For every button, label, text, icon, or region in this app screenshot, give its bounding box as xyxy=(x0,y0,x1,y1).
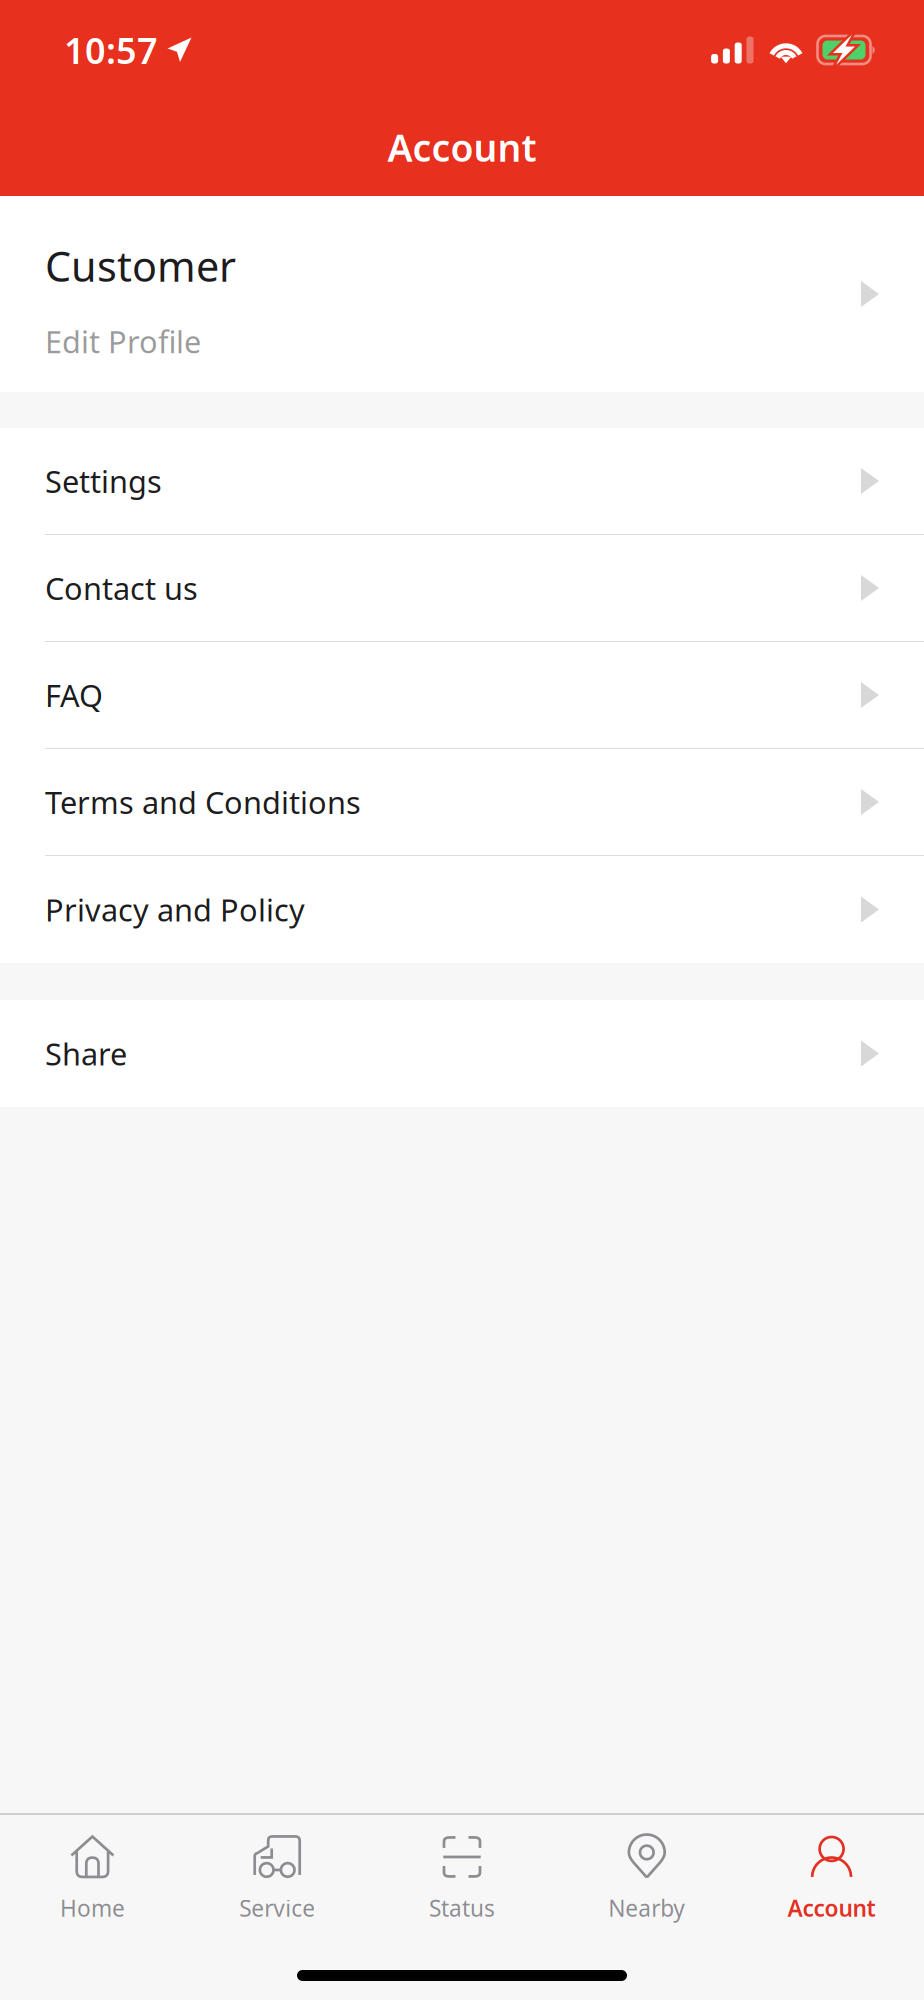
button[interactable]: Share xyxy=(0,1000,924,1107)
button[interactable]: Service xyxy=(185,1814,370,1919)
staticText: Privacy and Policy xyxy=(45,889,305,930)
staticText: Customer xyxy=(45,238,236,293)
button[interactable]: Customer xyxy=(0,196,924,392)
staticText: Status xyxy=(429,1893,495,1923)
button[interactable]: FAQ xyxy=(0,642,924,749)
staticText: Share xyxy=(45,1033,127,1074)
staticText: Nearby xyxy=(608,1893,685,1923)
staticText: Terms and Conditions xyxy=(45,782,361,822)
button[interactable]: Account xyxy=(739,1814,924,1919)
staticText: Edit Profile xyxy=(45,321,201,362)
staticText: FAQ xyxy=(45,675,103,715)
button[interactable]: Settings xyxy=(0,428,924,535)
button[interactable]: Home xyxy=(0,1814,185,1919)
staticText: Contact us xyxy=(45,568,198,608)
staticText: Account xyxy=(788,1893,876,1923)
staticText: 10:57 xyxy=(64,26,158,74)
staticText: Service xyxy=(239,1893,315,1923)
staticText: Settings xyxy=(45,461,162,501)
button[interactable]: Privacy and Policy xyxy=(0,856,924,963)
button[interactable]: Nearby xyxy=(554,1814,739,1919)
staticText: Account xyxy=(387,122,536,172)
staticText: Home xyxy=(60,1893,125,1923)
button[interactable]: Status xyxy=(370,1814,554,1919)
button[interactable]: Terms and Conditions xyxy=(0,749,924,856)
button[interactable]: Contact us xyxy=(0,535,924,642)
